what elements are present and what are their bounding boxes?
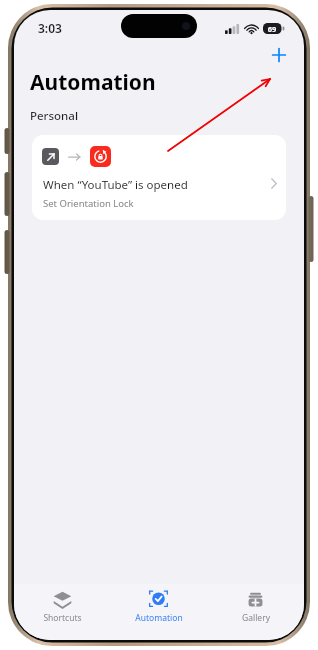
staticText: 3:03 xyxy=(38,20,62,36)
button[interactable]: Automation xyxy=(110,584,207,640)
staticText: When “YouTube” is opened xyxy=(43,177,188,193)
button[interactable]: Shortcuts xyxy=(14,584,110,640)
staticText: Automation xyxy=(135,612,183,624)
button[interactable]: Gallery xyxy=(207,584,304,640)
staticText: Personal xyxy=(30,108,78,124)
staticText: Shortcuts xyxy=(43,612,82,624)
button[interactable]: When “YouTube” is opened xyxy=(32,135,286,220)
staticText: Automation xyxy=(30,68,156,97)
staticText: Set Orientation Lock xyxy=(43,197,134,210)
staticText: Gallery xyxy=(242,612,270,624)
staticText: 69 xyxy=(263,24,281,34)
button[interactable]: New automation xyxy=(264,44,294,66)
